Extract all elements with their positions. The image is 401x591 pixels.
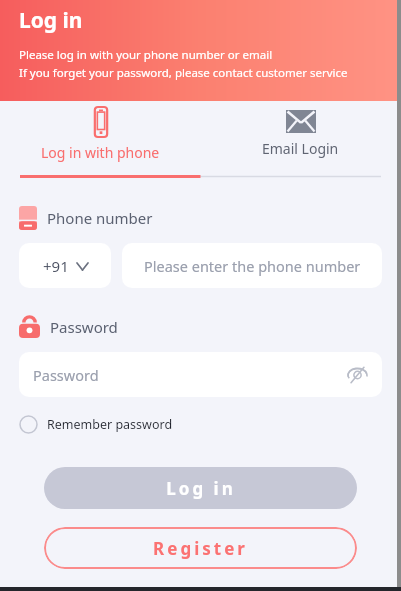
- staticText: Password: [50, 317, 118, 337]
- staticText: +91: [43, 256, 69, 276]
- button[interactable]: Log in with phone: [0, 101, 200, 178]
- button[interactable]: Remember password: [19, 415, 173, 434]
- button[interactable]: Show password: [346, 364, 368, 386]
- staticText: Log in: [19, 6, 83, 35]
- button[interactable]: Register: [44, 527, 357, 569]
- staticText: Email Login: [262, 139, 339, 158]
- button[interactable]: Email Login: [200, 101, 401, 178]
- staticText: If you forget your password, please cont…: [19, 65, 348, 81]
- staticText: Please enter the phone number: [144, 256, 361, 276]
- staticText: Password: [33, 365, 99, 385]
- button[interactable]: Please enter the phone number: [122, 243, 382, 288]
- staticText: Register: [153, 537, 248, 560]
- staticText: Log in with phone: [41, 143, 160, 162]
- button[interactable]: +91: [19, 243, 111, 288]
- staticText: Phone number: [47, 208, 153, 228]
- staticText: Log in: [166, 477, 236, 500]
- staticText: Please log in with your phone number or …: [19, 47, 273, 63]
- button[interactable]: Password: [19, 352, 382, 397]
- button[interactable]: Log in: [44, 467, 357, 509]
- staticText: Remember password: [47, 416, 173, 433]
